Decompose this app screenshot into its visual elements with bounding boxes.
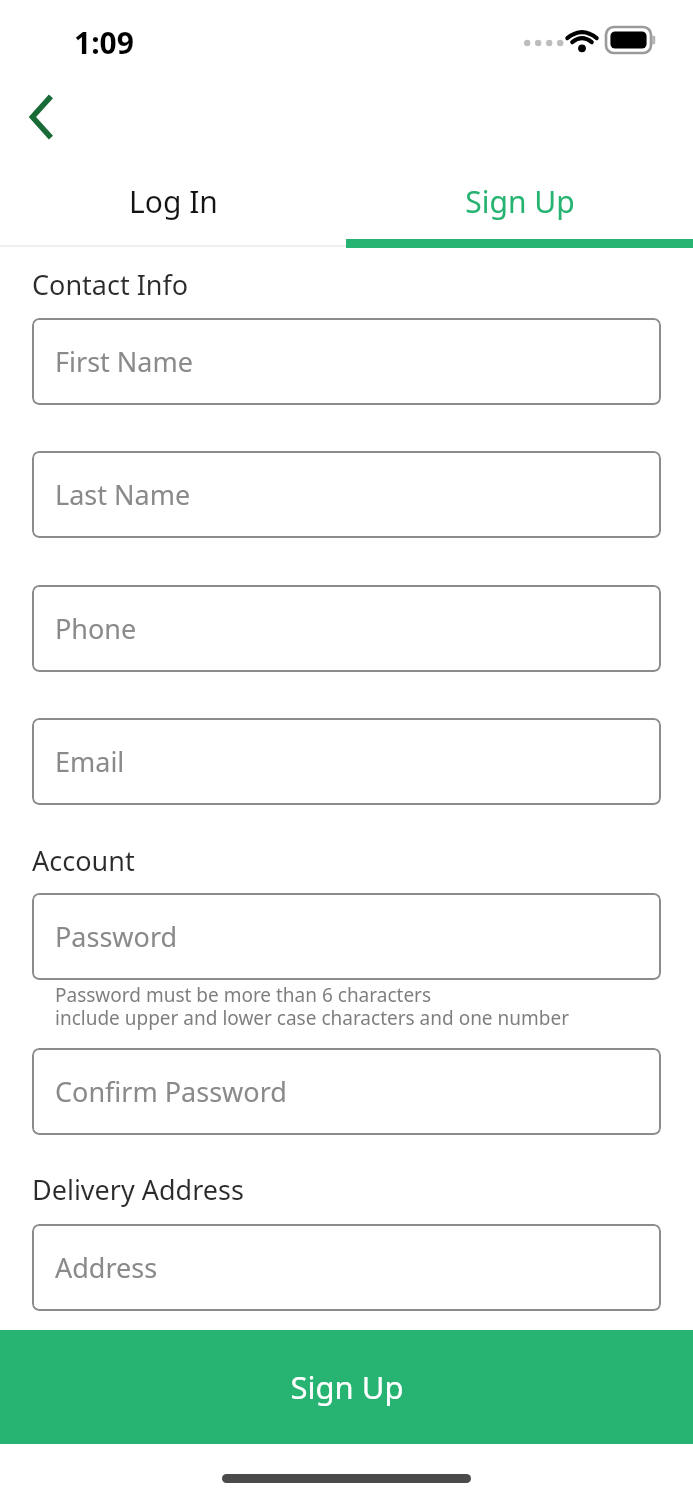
button[interactable]: Back (8, 80, 82, 154)
staticText: Last Name (55, 476, 191, 513)
button[interactable]: First Name (32, 318, 661, 405)
staticText: First Name (55, 343, 193, 380)
staticText: Sign Up (290, 1366, 404, 1408)
staticText: Log In (129, 181, 218, 222)
button[interactable]: Sign Up (0, 1330, 693, 1444)
button[interactable]: Last Name (32, 451, 661, 538)
staticText: Sign Up (465, 181, 575, 222)
button[interactable]: Log In (0, 170, 346, 247)
staticText: Address (55, 1249, 158, 1286)
button[interactable]: Email (32, 718, 661, 805)
staticText: Email (55, 743, 125, 780)
staticText: Confirm Password (55, 1073, 287, 1110)
staticText: Contact Info (32, 266, 189, 303)
button[interactable]: Phone (32, 585, 661, 672)
staticText: Password must be more than 6 characters (55, 982, 432, 1008)
staticText: Phone (55, 610, 137, 647)
staticText: Delivery Address (32, 1171, 244, 1208)
staticText: 1:09 (74, 22, 134, 63)
button[interactable]: Address (32, 1224, 661, 1311)
staticText: Account (32, 842, 135, 879)
button[interactable]: Sign Up (346, 170, 693, 247)
staticText: include upper and lower case characters … (55, 1005, 570, 1031)
staticText: Password (55, 918, 178, 955)
button[interactable]: Password (32, 893, 661, 980)
button[interactable]: Confirm Password (32, 1048, 661, 1135)
